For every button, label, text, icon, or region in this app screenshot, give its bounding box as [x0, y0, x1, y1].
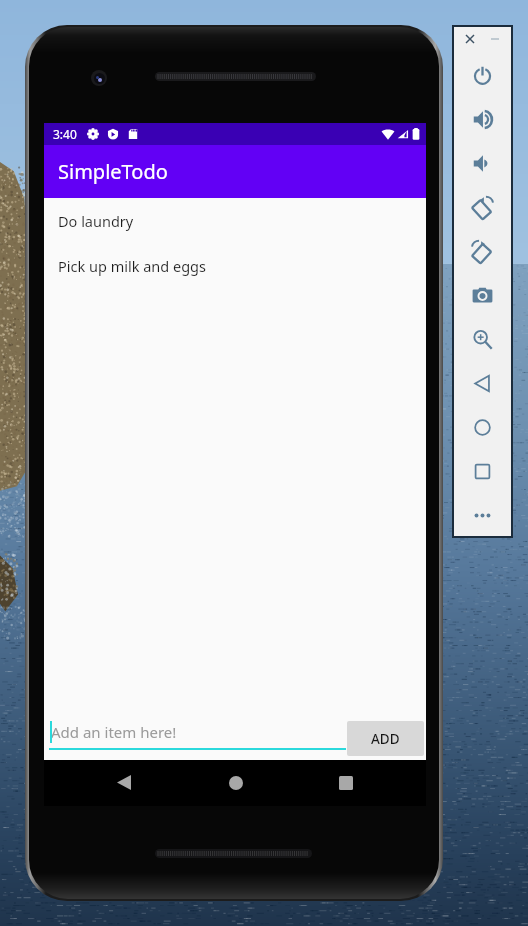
button[interactable]: ADD: [347, 721, 424, 756]
button[interactable]: Minimize: [485, 29, 505, 49]
staticText: Do laundry: [58, 211, 134, 231]
button[interactable]: Overview: [452, 449, 513, 493]
button[interactable]: Back: [452, 361, 513, 405]
staticText: SimpleTodo: [58, 158, 168, 185]
button[interactable]: Volume up: [452, 97, 513, 141]
button[interactable]: Add an item here!: [49, 722, 346, 752]
button[interactable]: Volume down: [452, 141, 513, 185]
staticText: Add an item here!: [51, 722, 177, 742]
button[interactable]: More options: [452, 493, 513, 537]
button[interactable]: Rotate left: [452, 185, 513, 229]
button[interactable]: Home: [452, 405, 513, 449]
button[interactable]: Rotate right: [452, 229, 513, 273]
staticText: 3:40: [53, 126, 77, 142]
staticText: ADD: [371, 730, 400, 748]
button[interactable]: Back: [103, 762, 144, 803]
button[interactable]: Pick up milk and eggs: [44, 243, 426, 288]
button[interactable]: Recent apps: [325, 762, 366, 803]
button[interactable]: Zoom: [452, 317, 513, 361]
staticText: Pick up milk and eggs: [58, 256, 206, 276]
button[interactable]: Home: [215, 762, 256, 803]
button[interactable]: Take screenshot: [452, 273, 513, 317]
button[interactable]: Power: [452, 53, 513, 97]
button[interactable]: Close: [460, 29, 480, 49]
button[interactable]: Do laundry: [44, 198, 426, 243]
